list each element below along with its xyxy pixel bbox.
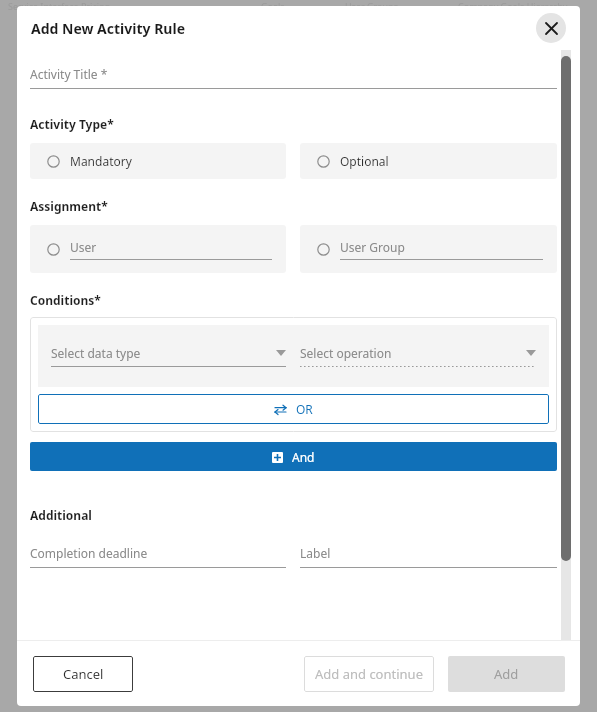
button[interactable]: Add and continue bbox=[304, 656, 434, 692]
staticText: Goals bbox=[261, 0, 285, 12]
staticText: Company Goals Hierarchy bbox=[458, 0, 568, 12]
button[interactable]: User Group bbox=[300, 225, 557, 273]
staticText: Mandatory bbox=[70, 153, 132, 169]
staticText: Cancel bbox=[63, 665, 104, 683]
button[interactable]: Close bbox=[536, 13, 566, 43]
staticText: Additional bbox=[30, 507, 92, 523]
staticText: Completion deadline bbox=[30, 545, 148, 561]
button[interactable]: Optional bbox=[300, 143, 557, 179]
staticText: Service Interface Pricing bbox=[8, 0, 111, 12]
button[interactable]: User bbox=[30, 225, 286, 273]
staticText: Activity Title * bbox=[30, 66, 108, 82]
staticText: Label bbox=[300, 545, 331, 561]
staticText: Conditions* bbox=[30, 292, 101, 308]
staticText: Assignment* bbox=[30, 198, 108, 214]
staticText: User bbox=[70, 239, 97, 255]
button[interactable]: Cancel bbox=[33, 656, 133, 692]
button[interactable]: And bbox=[30, 442, 557, 471]
staticText: Select operation bbox=[300, 345, 526, 361]
staticText: And bbox=[292, 449, 315, 465]
staticText: User Group bbox=[340, 239, 405, 255]
staticText: Select data type bbox=[51, 345, 276, 361]
button[interactable]: Select operation bbox=[300, 345, 536, 367]
staticText: OR bbox=[296, 401, 313, 417]
staticText: Add and continue bbox=[315, 665, 423, 683]
button[interactable]: Select data type bbox=[51, 345, 286, 367]
button[interactable]: Add bbox=[448, 656, 565, 692]
staticText: Activity Type* bbox=[30, 116, 114, 132]
staticText: User Groups bbox=[345, 0, 398, 12]
staticText: Optional bbox=[340, 153, 389, 169]
button[interactable]: OR bbox=[38, 394, 549, 424]
staticText: Add New Activity Rule bbox=[31, 19, 185, 38]
button[interactable]: Mandatory bbox=[30, 143, 286, 179]
staticText: Add bbox=[494, 665, 519, 683]
